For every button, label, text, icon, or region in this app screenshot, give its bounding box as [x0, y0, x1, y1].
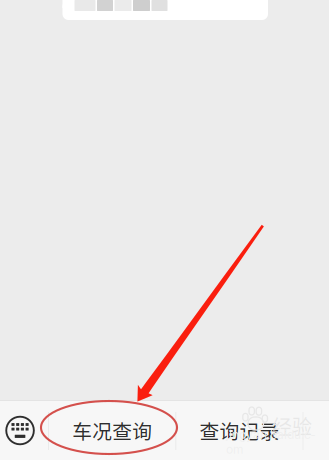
- button[interactable]: 车况查询: [49, 401, 175, 460]
- staticText: 车况查询: [72, 416, 152, 445]
- button[interactable]: Keyboard: [0, 401, 48, 460]
- button[interactable]: 查询记录: [176, 401, 303, 460]
- staticText: 经验: [272, 411, 312, 440]
- staticText: 查询记录: [199, 416, 279, 445]
- staticText: jingyan.baidu.com: [226, 427, 315, 456]
